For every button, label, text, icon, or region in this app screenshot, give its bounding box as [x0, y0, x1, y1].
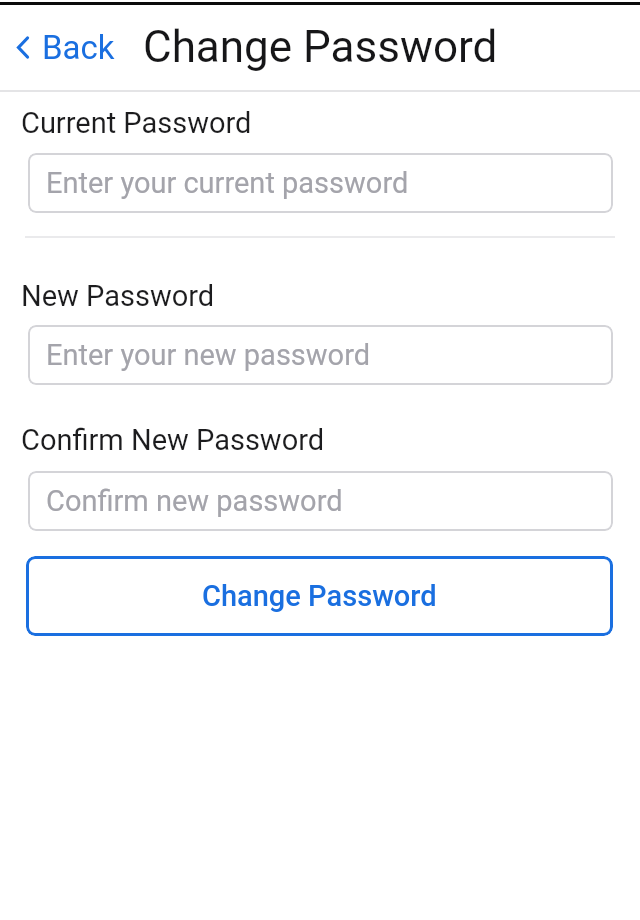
- button[interactable]: Change Password: [26, 556, 613, 636]
- staticText: Current Password: [21, 106, 252, 140]
- staticText: Enter your current password: [46, 166, 409, 200]
- staticText: Change Password: [202, 579, 437, 613]
- button[interactable]: Confirm new password: [28, 471, 613, 531]
- button[interactable]: Enter your current password: [28, 153, 613, 213]
- staticText: Back: [42, 28, 115, 67]
- staticText: New Password: [21, 279, 215, 313]
- staticText: Confirm new password: [46, 484, 343, 518]
- button[interactable]: Back: [17, 28, 115, 67]
- staticText: Enter your new password: [46, 338, 371, 372]
- staticText: Change Password: [143, 21, 498, 73]
- button[interactable]: Enter your new password: [28, 325, 613, 385]
- staticText: Confirm New Password: [21, 423, 325, 457]
